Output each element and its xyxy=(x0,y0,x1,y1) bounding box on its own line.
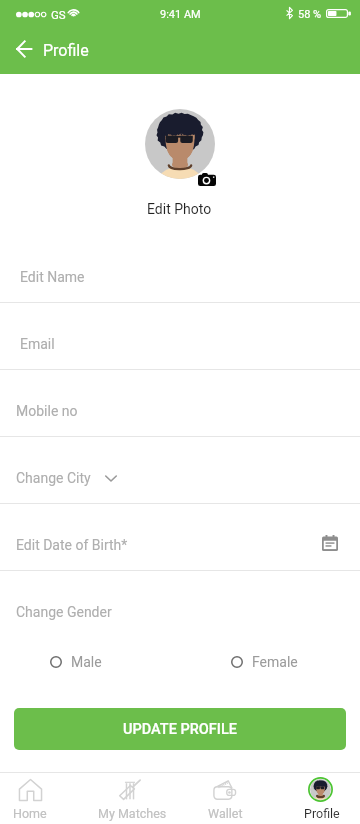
button[interactable]: My Matches xyxy=(87,774,177,824)
staticText: Home xyxy=(13,806,47,821)
staticText: Edit Photo xyxy=(147,201,212,217)
staticText: Female xyxy=(252,654,298,670)
button[interactable]: Male xyxy=(50,650,102,674)
button[interactable] xyxy=(0,503,360,570)
button[interactable]: Profile xyxy=(277,774,360,824)
staticText: Wallet xyxy=(208,806,243,821)
button[interactable] xyxy=(0,369,360,436)
button[interactable] xyxy=(0,436,360,503)
staticText: Edit Date of Birth* xyxy=(16,537,128,553)
staticText: 58 % xyxy=(298,8,322,21)
staticText: Mobile no xyxy=(16,403,78,419)
button[interactable]: Female xyxy=(231,650,298,674)
staticText: My Matches xyxy=(98,806,167,821)
staticText: Change Gender xyxy=(16,604,112,620)
staticText: Email xyxy=(20,336,55,352)
button[interactable]: Wallet xyxy=(180,774,270,824)
staticText: Profile xyxy=(304,806,340,821)
staticText: GS xyxy=(51,8,66,21)
button[interactable]: Edit photo xyxy=(145,109,215,179)
button[interactable]: Back xyxy=(6,31,42,67)
staticText: Profile xyxy=(43,41,89,60)
staticText: UPDATE PROFILE xyxy=(123,721,237,738)
button[interactable] xyxy=(0,302,360,369)
staticText: Male xyxy=(71,654,102,670)
staticText: Edit Name xyxy=(20,269,85,285)
button[interactable]: UPDATE PROFILE xyxy=(14,708,346,750)
staticText: 9:41 AM xyxy=(160,8,201,21)
staticText: Change City xyxy=(16,470,91,486)
button[interactable]: Home xyxy=(0,774,75,824)
button[interactable] xyxy=(0,235,360,302)
